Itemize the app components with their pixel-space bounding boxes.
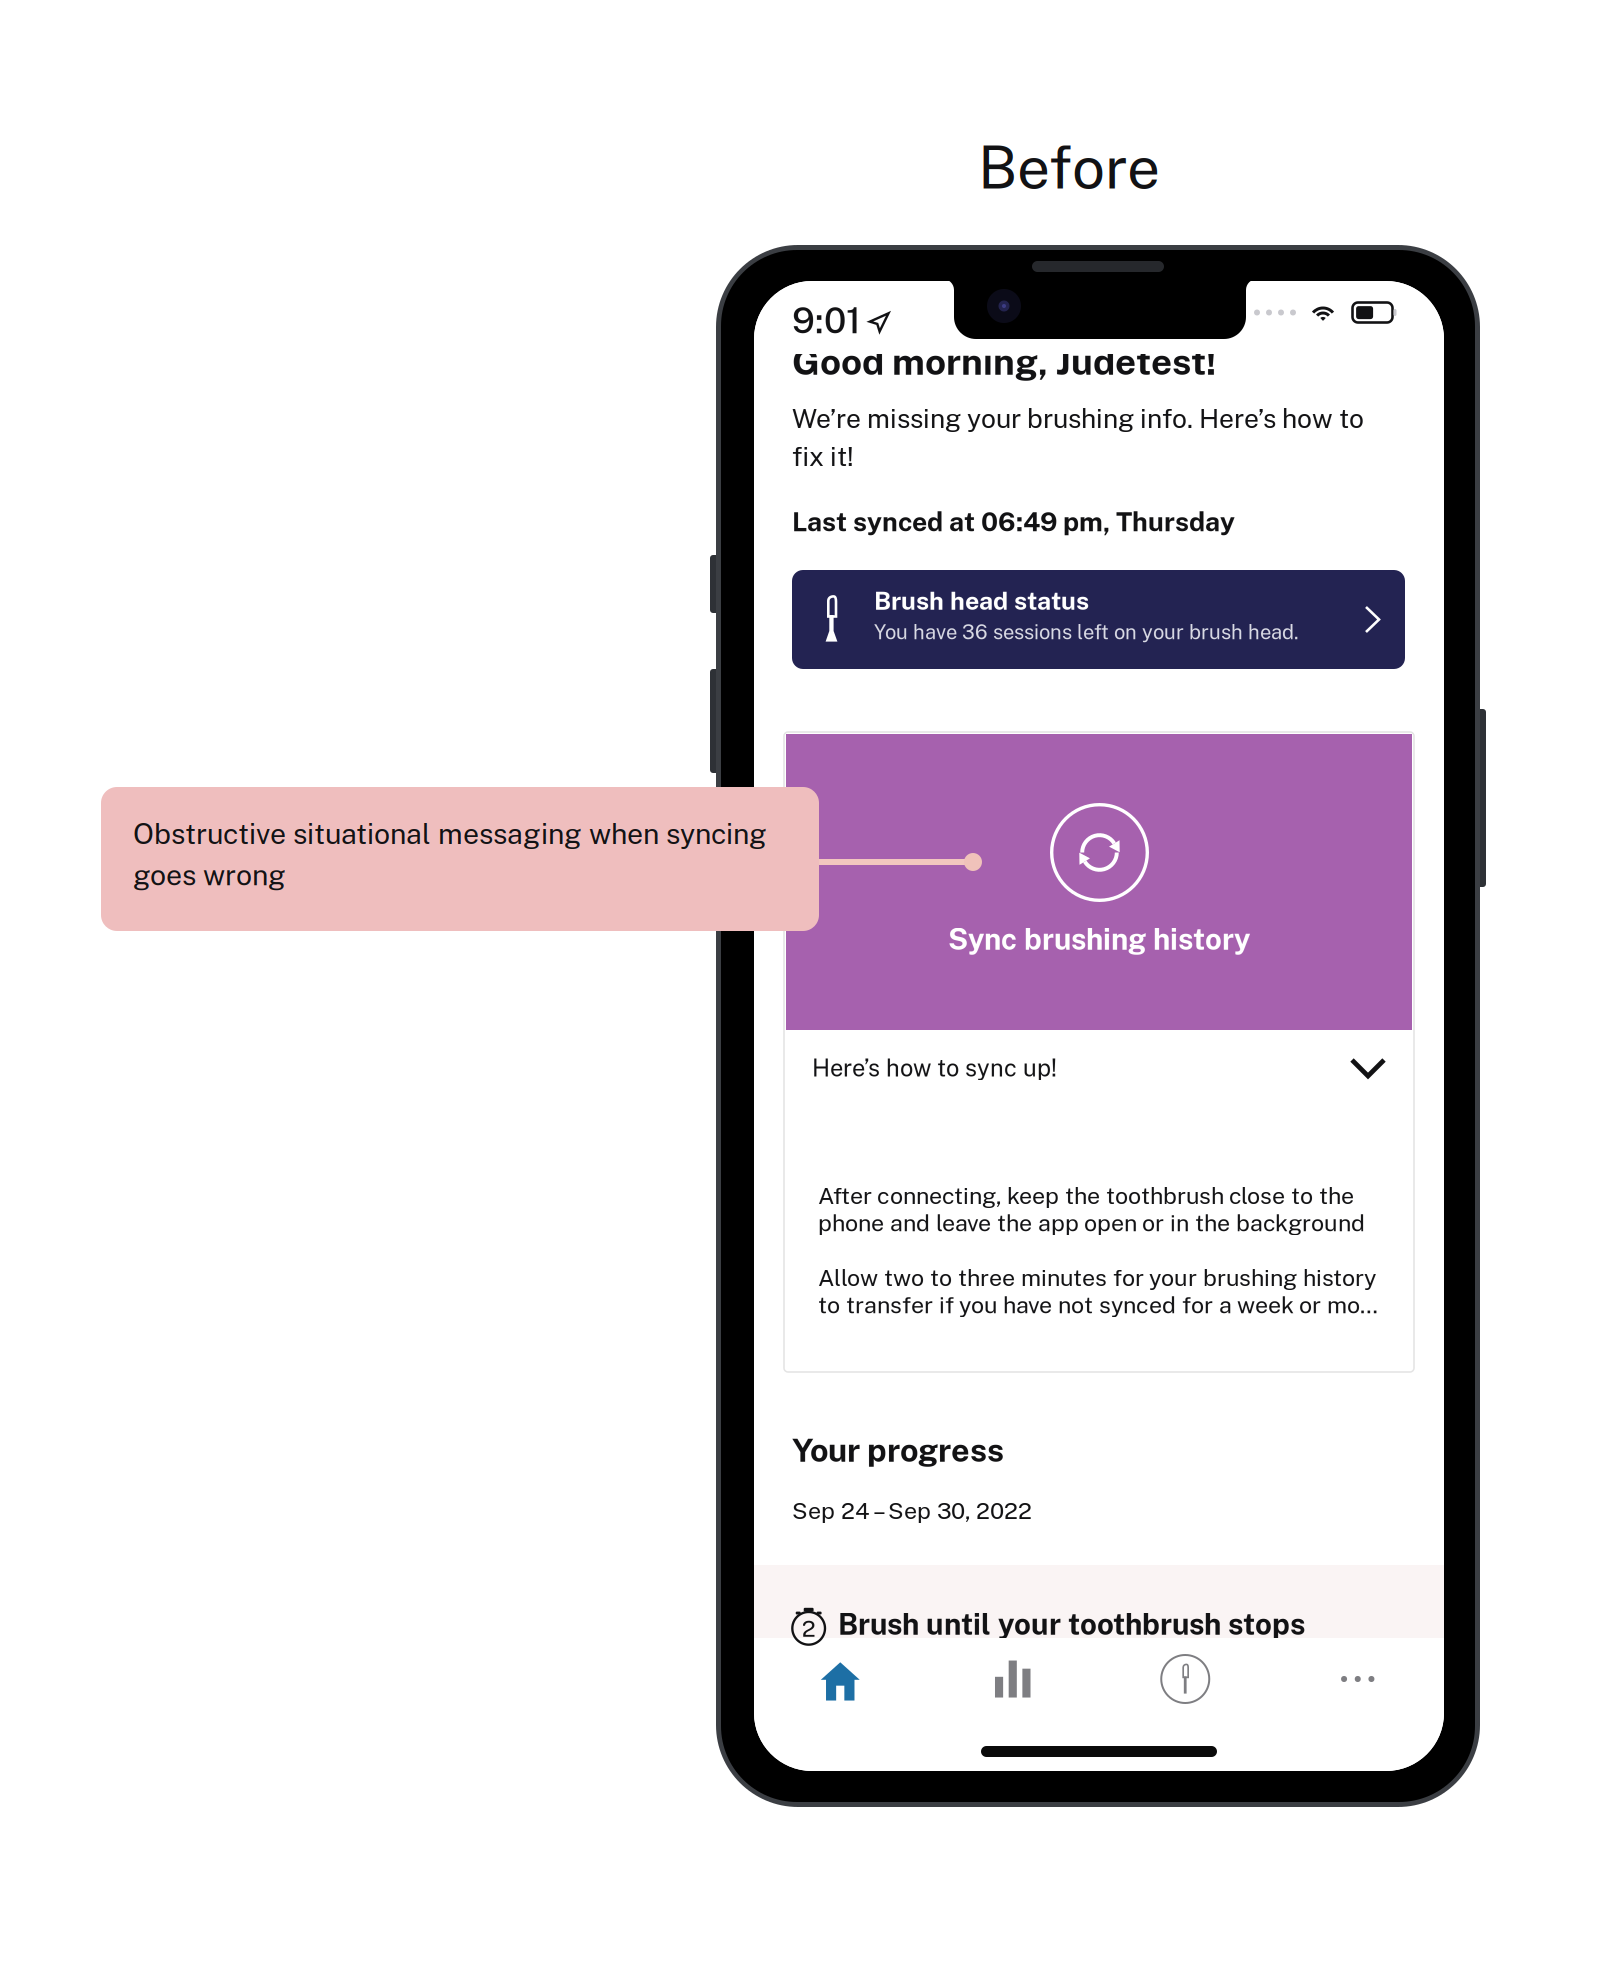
staticText: Here’s how to sync up!: [812, 1054, 1057, 1082]
staticText: Before: [978, 133, 1160, 202]
staticText: After connecting, keep the toothbrush cl…: [818, 1182, 1365, 1236]
button[interactable]: Brush head status: [792, 570, 1405, 669]
staticText: Obstructive situational messaging when s…: [133, 817, 767, 892]
staticText: You have 36 sessions left on your brush …: [874, 620, 1299, 644]
staticText: Brush head status: [874, 586, 1089, 615]
staticText: Last synced at 06:49 pm, Thursday: [792, 506, 1235, 537]
staticText: Good morning, Judetest!: [792, 340, 1216, 383]
button[interactable]: Brush head: [1099, 1640, 1271, 1718]
button[interactable]: Home: [754, 1640, 926, 1718]
button[interactable]: Here’s how to sync up!: [786, 1030, 1412, 1118]
staticText: Sep 24 – Sep 30, 2022: [792, 1497, 1032, 1524]
button[interactable]: Sync brushing history: [786, 734, 1412, 1030]
staticText: Your progress: [792, 1431, 1004, 1469]
staticText: 9:01: [792, 299, 861, 341]
staticText: Allow two to three minutes for your brus…: [818, 1264, 1378, 1318]
button[interactable]: Statistics: [926, 1640, 1099, 1718]
staticText: We’re missing your brushing info. Here’s…: [792, 403, 1364, 472]
button[interactable]: More: [1271, 1640, 1444, 1718]
staticText: Sync brushing history: [948, 922, 1250, 956]
staticText: Brush until your toothbrush stops: [838, 1607, 1305, 1641]
staticText: 2: [802, 1615, 816, 1642]
